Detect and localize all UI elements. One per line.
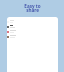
staticText: Easy to share bbox=[24, 3, 41, 14]
button[interactable] bbox=[7, 24, 58, 29]
button[interactable] bbox=[7, 29, 58, 34]
button[interactable] bbox=[7, 19, 58, 24]
button[interactable] bbox=[7, 34, 58, 39]
